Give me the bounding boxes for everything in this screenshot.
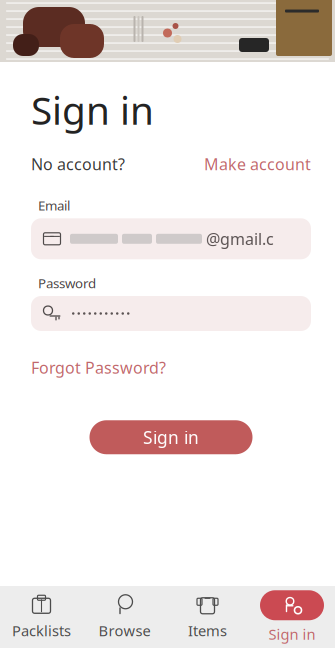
staticText: Make account [204, 153, 311, 174]
staticText: Forgot Password? [31, 357, 166, 378]
button[interactable]: @gmail.c [31, 218, 311, 259]
button[interactable]: Forgot Password? [31, 357, 166, 378]
staticText: Sign in [143, 426, 199, 449]
button[interactable]: Sign in [89, 420, 252, 454]
button[interactable]: Items [166, 586, 249, 648]
staticText: Sign in [31, 84, 154, 135]
button[interactable]: Packlists [0, 586, 83, 648]
staticText: No account? [31, 153, 125, 174]
staticText: Items [188, 621, 227, 640]
staticText: Packlists [12, 621, 71, 640]
button[interactable] [31, 296, 311, 331]
button[interactable]: Sign in [249, 586, 335, 648]
staticText: Browse [98, 621, 150, 640]
button[interactable]: Browse [83, 586, 166, 648]
staticText: Sign in [268, 624, 315, 644]
staticText: Password [38, 274, 96, 292]
staticText: Email [38, 197, 70, 214]
staticText: @gmail.c [206, 228, 274, 249]
button[interactable]: Make account [204, 153, 311, 174]
